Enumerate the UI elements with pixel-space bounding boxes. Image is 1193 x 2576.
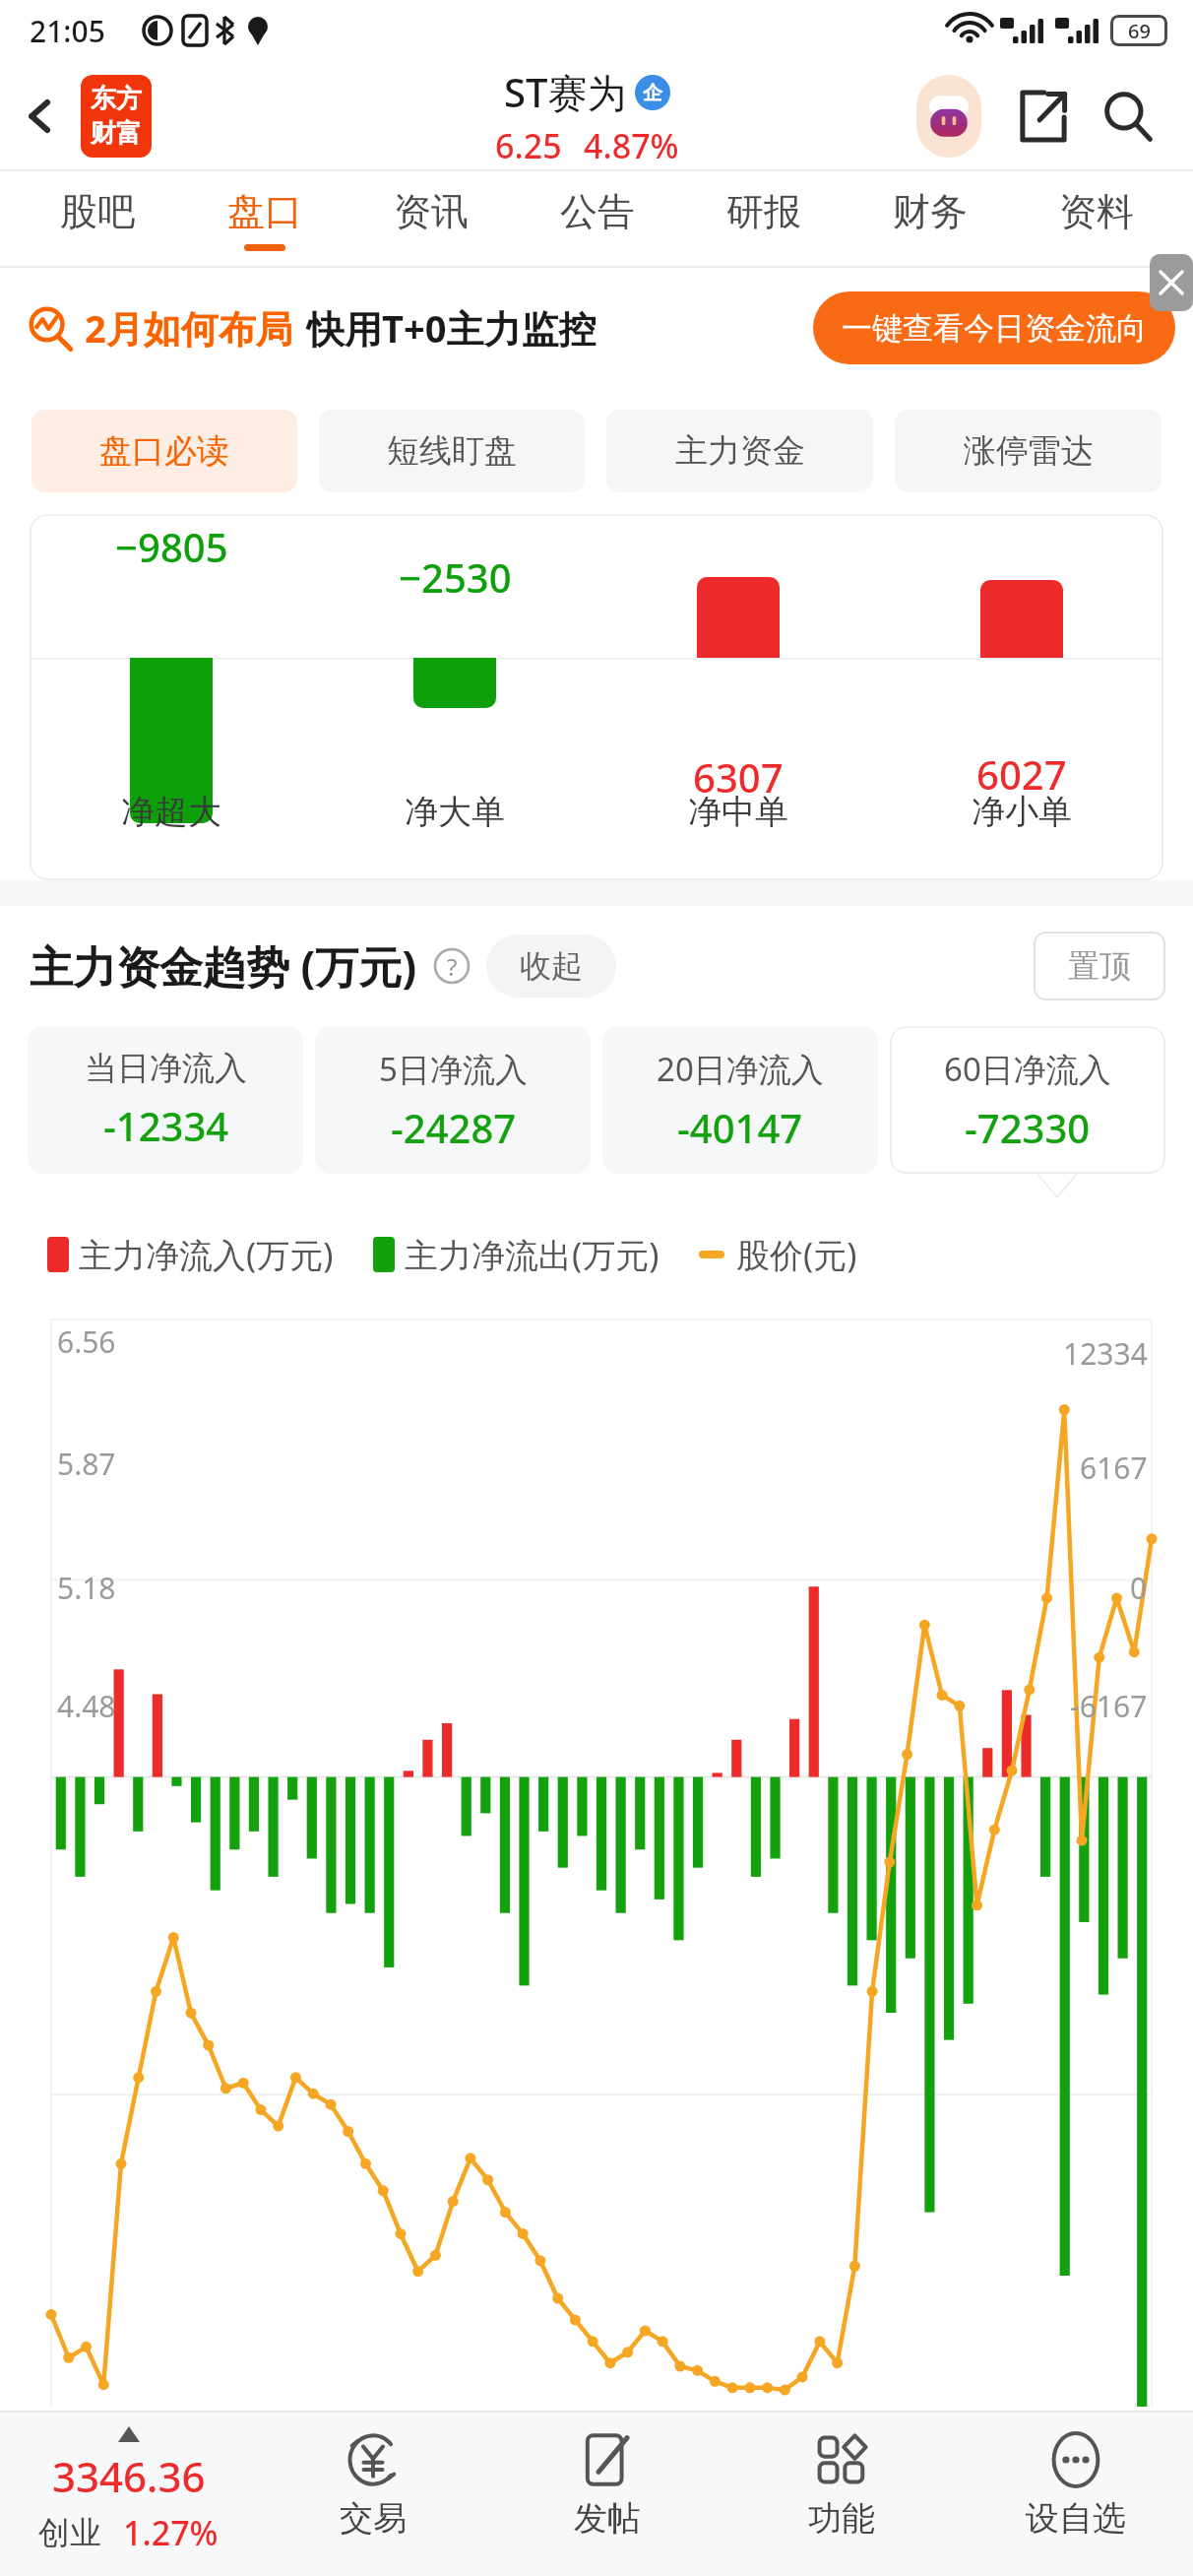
staticText: 企	[643, 81, 662, 105]
staticText: 收起	[520, 946, 583, 986]
staticText: 60日净流入	[944, 1047, 1111, 1091]
button[interactable]: Back	[6, 82, 75, 151]
staticText: 主力资金	[675, 430, 805, 472]
button[interactable]: 一键查看今日资金流向	[813, 291, 1175, 364]
staticText: 净大单	[405, 791, 505, 833]
button[interactable]: 盘口必读	[31, 410, 297, 492]
staticText: 5.87	[57, 1444, 116, 1484]
staticText: 研报	[726, 188, 801, 235]
staticText: 净小单	[972, 791, 1072, 833]
button[interactable]: 主力资金趋势图	[0, 1300, 1193, 2411]
button[interactable]: 功能	[724, 2411, 959, 2576]
staticText: 功能	[808, 2497, 875, 2540]
button[interactable]: 交易	[256, 2411, 490, 2576]
button[interactable]: 股吧	[14, 171, 181, 268]
button[interactable]: 收起	[486, 934, 616, 998]
button[interactable]: 财务	[847, 171, 1013, 268]
staticText: 6027	[976, 747, 1067, 801]
button[interactable]: 20日净流入	[602, 1026, 878, 1174]
button[interactable]: 资料	[1013, 171, 1179, 268]
staticText: 主力资金趋势 (万元)	[30, 936, 417, 996]
button[interactable]: −9805	[30, 514, 1163, 880]
staticText: 3346.36	[52, 2448, 206, 2504]
staticText: 6307	[693, 750, 784, 804]
button[interactable]: 5日净流入	[315, 1026, 591, 1174]
button[interactable]: 发帖	[490, 2411, 724, 2576]
staticText: 财务	[893, 188, 968, 235]
button[interactable]: Close ad	[1150, 254, 1193, 311]
staticText: 6.56	[57, 1321, 116, 1362]
staticText: −9805	[115, 520, 228, 573]
staticText: ?	[447, 950, 458, 983]
button[interactable]: Search	[1089, 77, 1167, 156]
staticText: 财富	[91, 117, 142, 150]
staticText: 设自选	[1026, 2497, 1126, 2540]
staticText: 置顶	[1068, 946, 1131, 986]
staticText: 股吧	[60, 188, 135, 235]
staticText: 发帖	[574, 2497, 641, 2540]
button[interactable]: 设自选	[959, 2411, 1193, 2576]
staticText: 资讯	[394, 188, 469, 235]
button[interactable]: 置顶	[1034, 932, 1165, 1000]
staticText: 公告	[560, 188, 635, 235]
staticText: 主力净流出(万元)	[405, 1232, 659, 1277]
staticText: 6167	[1080, 1448, 1148, 1488]
staticText: 69	[1128, 18, 1151, 44]
staticText: 交易	[340, 2497, 407, 2540]
staticText: ST赛为	[504, 65, 627, 119]
button[interactable]: 主力资金	[606, 410, 873, 492]
staticText: -72330	[965, 1101, 1091, 1154]
button[interactable]: 资讯	[347, 171, 514, 268]
staticText: 东方	[91, 83, 142, 115]
button[interactable]: 短线盯盘	[319, 410, 585, 492]
staticText: -6167	[1070, 1686, 1148, 1726]
staticText: 2月如何布局	[85, 302, 293, 354]
staticText: 21:05	[30, 11, 105, 51]
staticText: 主力净流入(万元)	[79, 1232, 334, 1277]
staticText: 盘口必读	[99, 430, 229, 472]
button[interactable]: 涨停雷达	[895, 410, 1162, 492]
button[interactable]: 公告	[514, 171, 680, 268]
button[interactable]: 60日净流入	[890, 1026, 1165, 1174]
staticText: 快用T+0主力监控	[307, 302, 596, 354]
staticText: -24287	[391, 1101, 517, 1154]
staticText: −2530	[399, 550, 512, 604]
staticText: -40147	[677, 1101, 803, 1154]
staticText: 5.18	[57, 1568, 116, 1608]
staticText: 当日净流入	[85, 1048, 247, 1089]
button[interactable]: Help	[431, 945, 472, 987]
staticText: 一键查看今日资金流向	[842, 309, 1147, 348]
staticText: 股价(元)	[736, 1232, 857, 1277]
staticText: 20日净流入	[657, 1047, 824, 1091]
staticText: 涨停雷达	[964, 430, 1094, 472]
button[interactable]: 研报	[680, 171, 847, 268]
staticText: 净中单	[688, 791, 788, 833]
staticText: -12334	[103, 1099, 229, 1152]
staticText: 5日净流入	[379, 1047, 528, 1091]
staticText: 1.27%	[123, 2510, 219, 2555]
staticText: 净超大	[121, 791, 221, 833]
button[interactable]: 东方财富	[81, 75, 152, 158]
staticText: 盘口	[227, 188, 302, 235]
staticText: 资料	[1059, 188, 1134, 235]
staticText: 短线盯盘	[387, 430, 517, 472]
button[interactable]: 3346.36	[0, 2411, 256, 2576]
staticText: 6.25	[495, 123, 562, 168]
staticText: 创业	[38, 2513, 101, 2552]
button[interactable]: 盘口	[181, 171, 347, 268]
button[interactable]: Assistant	[904, 71, 994, 161]
staticText: 0	[1130, 1568, 1148, 1608]
staticText: 4.48	[57, 1686, 116, 1726]
staticText: 4.87%	[584, 123, 679, 168]
button[interactable]: 当日净流入	[28, 1026, 303, 1174]
button[interactable]: Share	[1004, 77, 1083, 156]
staticText: 12334	[1063, 1333, 1148, 1374]
